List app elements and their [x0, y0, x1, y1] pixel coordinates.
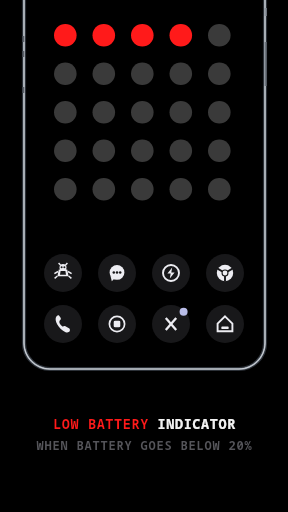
button[interactable]: Energy	[150, 252, 192, 294]
button[interactable]: Phone	[42, 303, 84, 345]
button[interactable]: Mail	[96, 303, 138, 345]
button[interactable]: Bug tracker	[42, 252, 84, 294]
button[interactable]: X	[150, 303, 192, 345]
button[interactable]: Chrome	[204, 252, 246, 294]
button[interactable]: Messages	[96, 252, 138, 294]
button[interactable]: Google Home	[204, 303, 246, 345]
staticText: WHEN BATTERY GOES BELOW 20%	[36, 437, 253, 453]
staticText: LOW BATTERY INDICATOR	[53, 415, 236, 433]
